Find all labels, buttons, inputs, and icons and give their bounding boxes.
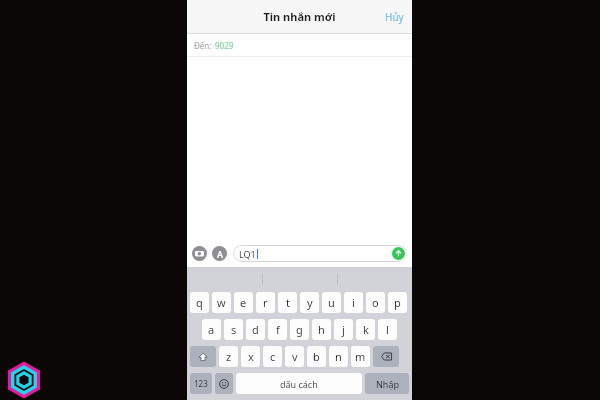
button[interactable]: s bbox=[224, 319, 243, 340]
staticText: y bbox=[307, 295, 313, 310]
button[interactable]: Send bbox=[392, 247, 405, 260]
button[interactable]: h bbox=[312, 319, 331, 340]
button[interactable]: z bbox=[219, 346, 238, 367]
staticText: f bbox=[276, 322, 280, 337]
staticText: Đến: bbox=[194, 40, 212, 51]
button[interactable]: y bbox=[300, 292, 319, 313]
staticText: e bbox=[240, 295, 247, 310]
staticText: j bbox=[342, 322, 345, 337]
button[interactable]: v bbox=[285, 346, 304, 367]
staticText: z bbox=[226, 349, 232, 364]
button[interactable]: k bbox=[356, 319, 375, 340]
staticText: g bbox=[296, 322, 303, 337]
staticText: k bbox=[363, 322, 369, 337]
button[interactable]: Apps bbox=[212, 246, 227, 261]
staticText: d bbox=[252, 322, 259, 337]
button[interactable]: g bbox=[290, 319, 309, 340]
button[interactable]: e bbox=[234, 292, 253, 313]
staticText: m bbox=[355, 349, 366, 364]
button[interactable]: p bbox=[388, 292, 407, 313]
button[interactable]: w bbox=[212, 292, 231, 313]
button[interactable]: j bbox=[334, 319, 353, 340]
staticText: w bbox=[217, 295, 226, 310]
button[interactable]: 123 bbox=[190, 373, 212, 394]
staticText: r bbox=[263, 295, 268, 310]
button[interactable]: l bbox=[378, 319, 397, 340]
staticText: a bbox=[208, 322, 215, 337]
button[interactable]: Nhập bbox=[365, 373, 409, 394]
button[interactable]: t bbox=[278, 292, 297, 313]
staticText: q bbox=[196, 295, 203, 310]
staticText: c bbox=[270, 349, 276, 364]
button[interactable]: d bbox=[246, 319, 265, 340]
button[interactable]: Emoji bbox=[215, 373, 233, 394]
staticText: LQ1 bbox=[239, 248, 256, 260]
staticText: h bbox=[318, 322, 325, 337]
button[interactable]: q bbox=[190, 292, 209, 313]
staticText: v bbox=[292, 349, 298, 364]
staticText: u bbox=[328, 295, 335, 310]
staticText: x bbox=[248, 349, 254, 364]
staticText: A bbox=[217, 248, 223, 260]
staticText: 123 bbox=[194, 378, 208, 389]
button[interactable]: Hủy bbox=[377, 5, 412, 29]
button[interactable]: b bbox=[307, 346, 326, 367]
staticText: l bbox=[386, 322, 389, 337]
button[interactable]: Camera bbox=[192, 246, 207, 261]
staticText: i bbox=[352, 295, 355, 310]
button[interactable]: m bbox=[351, 346, 370, 367]
staticText: o bbox=[372, 295, 379, 310]
button[interactable]: f bbox=[268, 319, 287, 340]
button[interactable]: c bbox=[263, 346, 282, 367]
button[interactable]: Đến: bbox=[187, 34, 412, 56]
staticText: n bbox=[335, 349, 342, 364]
staticText: s bbox=[231, 322, 237, 337]
staticText: 9029 bbox=[215, 40, 234, 51]
staticText: t bbox=[286, 295, 290, 310]
staticText: dấu cách bbox=[280, 378, 318, 390]
button[interactable]: u bbox=[322, 292, 341, 313]
button[interactable]: Shift bbox=[190, 346, 216, 367]
staticText: b bbox=[313, 349, 320, 364]
button[interactable]: dấu cách bbox=[236, 373, 362, 394]
button[interactable]: Backspace bbox=[373, 346, 399, 367]
button[interactable]: i bbox=[344, 292, 363, 313]
button[interactable]: r bbox=[256, 292, 275, 313]
button[interactable]: n bbox=[329, 346, 348, 367]
staticText: Tin nhắn mới bbox=[263, 9, 336, 24]
staticText: Hủy bbox=[385, 10, 404, 24]
staticText: Nhập bbox=[376, 378, 399, 390]
button[interactable]: LQ1 bbox=[233, 245, 407, 262]
button[interactable]: x bbox=[241, 346, 260, 367]
staticText: p bbox=[394, 295, 401, 310]
button[interactable]: o bbox=[366, 292, 385, 313]
button[interactable]: a bbox=[202, 319, 221, 340]
